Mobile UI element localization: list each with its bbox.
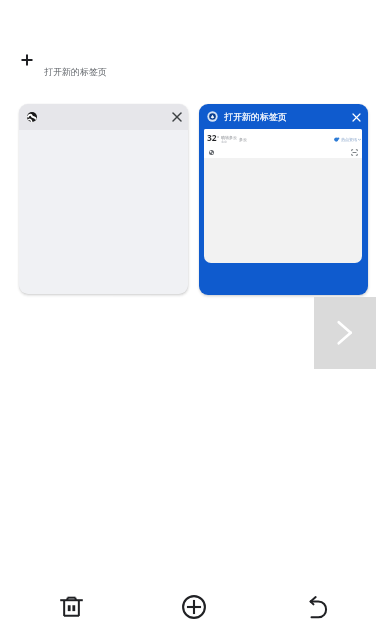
button[interactable]: 打开新的标签页 <box>199 104 368 295</box>
button[interactable]: Close tab <box>349 110 363 124</box>
button[interactable]: New tab <box>173 586 215 628</box>
staticText: 晴转多云 <box>221 135 237 140</box>
staticText: 多云 <box>239 137 247 142</box>
button[interactable]: Close all tabs <box>50 585 92 627</box>
staticText: ° <box>217 135 220 142</box>
button[interactable]: Back <box>296 586 338 628</box>
button[interactable]: 打开新的标签页 <box>14 44 118 80</box>
button[interactable]: Close tab <box>19 104 188 294</box>
staticText: 打开新的标签页 <box>224 111 287 122</box>
button[interactable]: Next <box>314 297 376 369</box>
staticText: 北京 <box>221 140 227 144</box>
button[interactable]: Close tab <box>169 109 185 125</box>
staticText: 热点资讯 <box>341 137 357 142</box>
staticText: 打开新的标签页 <box>44 66 107 77</box>
staticText: 32 <box>207 132 217 144</box>
